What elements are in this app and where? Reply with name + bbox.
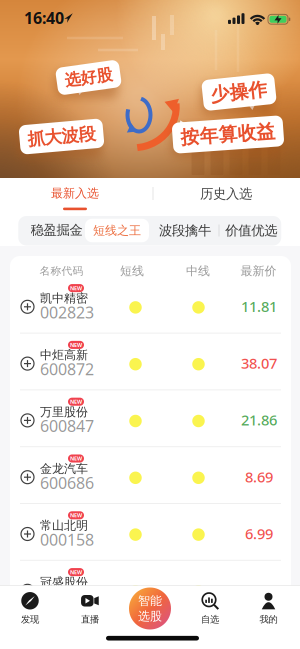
staticText: 历史入选 <box>200 185 252 202</box>
staticText: 38.07 <box>241 353 277 373</box>
button[interactable]: 添加凯中精密到自选 <box>20 299 35 314</box>
staticText: 发现 <box>21 614 39 625</box>
button[interactable]: 添加常山北明到自选 <box>20 526 35 541</box>
staticText: 16:40 <box>24 7 64 28</box>
staticText: 按年算收益 <box>180 123 275 146</box>
staticText: 万里股份 <box>40 404 88 419</box>
button[interactable]: 自选 <box>182 587 238 629</box>
staticText: 价值优选 <box>225 222 277 239</box>
staticText: NEW <box>70 512 82 519</box>
staticText: 凯中精密 <box>40 291 88 306</box>
button[interactable]: 历史入选 <box>156 181 296 207</box>
button[interactable]: 最新入选 <box>5 184 145 212</box>
staticText: 最新价 <box>240 264 276 278</box>
button[interactable]: 添加万里股份到自选 <box>20 413 35 428</box>
staticText: 名称代码 <box>39 264 83 277</box>
staticText: 600872 <box>40 358 94 380</box>
button[interactable]: 我的 <box>240 587 296 629</box>
staticText: 波段擒牛 <box>159 222 211 239</box>
button[interactable]: 发现 <box>2 587 58 629</box>
staticText: NEW <box>70 455 82 462</box>
staticText: 短线 <box>120 264 144 278</box>
staticText: NEW <box>70 341 82 348</box>
button[interactable]: 直播 <box>62 587 118 629</box>
button[interactable]: 添加冠盛股份到自选 <box>20 583 35 598</box>
staticText: 23.10 <box>241 581 277 600</box>
staticText: 选好股 <box>64 68 112 87</box>
staticText: 短线之王 <box>93 223 141 238</box>
staticText: 我的 <box>259 614 277 625</box>
staticText: 直播 <box>81 614 99 625</box>
staticText: NEW <box>70 285 82 292</box>
staticText: 600847 <box>40 415 94 436</box>
staticText: NEW <box>70 569 82 576</box>
staticText: 中炬高新 <box>40 348 88 362</box>
staticText: 冠盛股份 <box>40 575 88 590</box>
staticText: 21.86 <box>241 410 277 430</box>
staticText: 中线 <box>186 264 210 278</box>
staticText: 选股 <box>138 609 162 624</box>
button[interactable]: 短线之王 <box>84 217 150 244</box>
staticText: 002823 <box>40 302 94 323</box>
staticText: 智能 <box>138 593 162 608</box>
button[interactable]: 波段擒牛 <box>154 216 216 245</box>
button[interactable]: 添加金龙汽车到自选 <box>20 470 35 485</box>
button[interactable]: 添加中炬高新到自选 <box>20 356 35 371</box>
staticText: 000158 <box>40 529 94 550</box>
staticText: 常山北明 <box>40 518 88 533</box>
staticText: 少操作 <box>210 80 267 103</box>
staticText: 8.69 <box>245 467 273 486</box>
staticText: 稳盈掘金 <box>30 222 82 238</box>
staticText: NEW <box>70 398 82 405</box>
staticText: 600686 <box>40 472 94 493</box>
button[interactable]: 稳盈掘金 <box>25 215 87 244</box>
staticText: 最新入选 <box>51 186 99 200</box>
button[interactable]: 价值优选 <box>220 216 282 245</box>
staticText: 抓大波段 <box>27 126 95 147</box>
staticText: 金龙汽车 <box>40 461 88 476</box>
button[interactable]: 智能选股 <box>126 586 174 630</box>
staticText: 自选 <box>201 614 219 625</box>
staticText: 605088 <box>40 586 94 607</box>
staticText: 6.99 <box>245 524 273 543</box>
staticText: 11.81 <box>241 297 277 316</box>
